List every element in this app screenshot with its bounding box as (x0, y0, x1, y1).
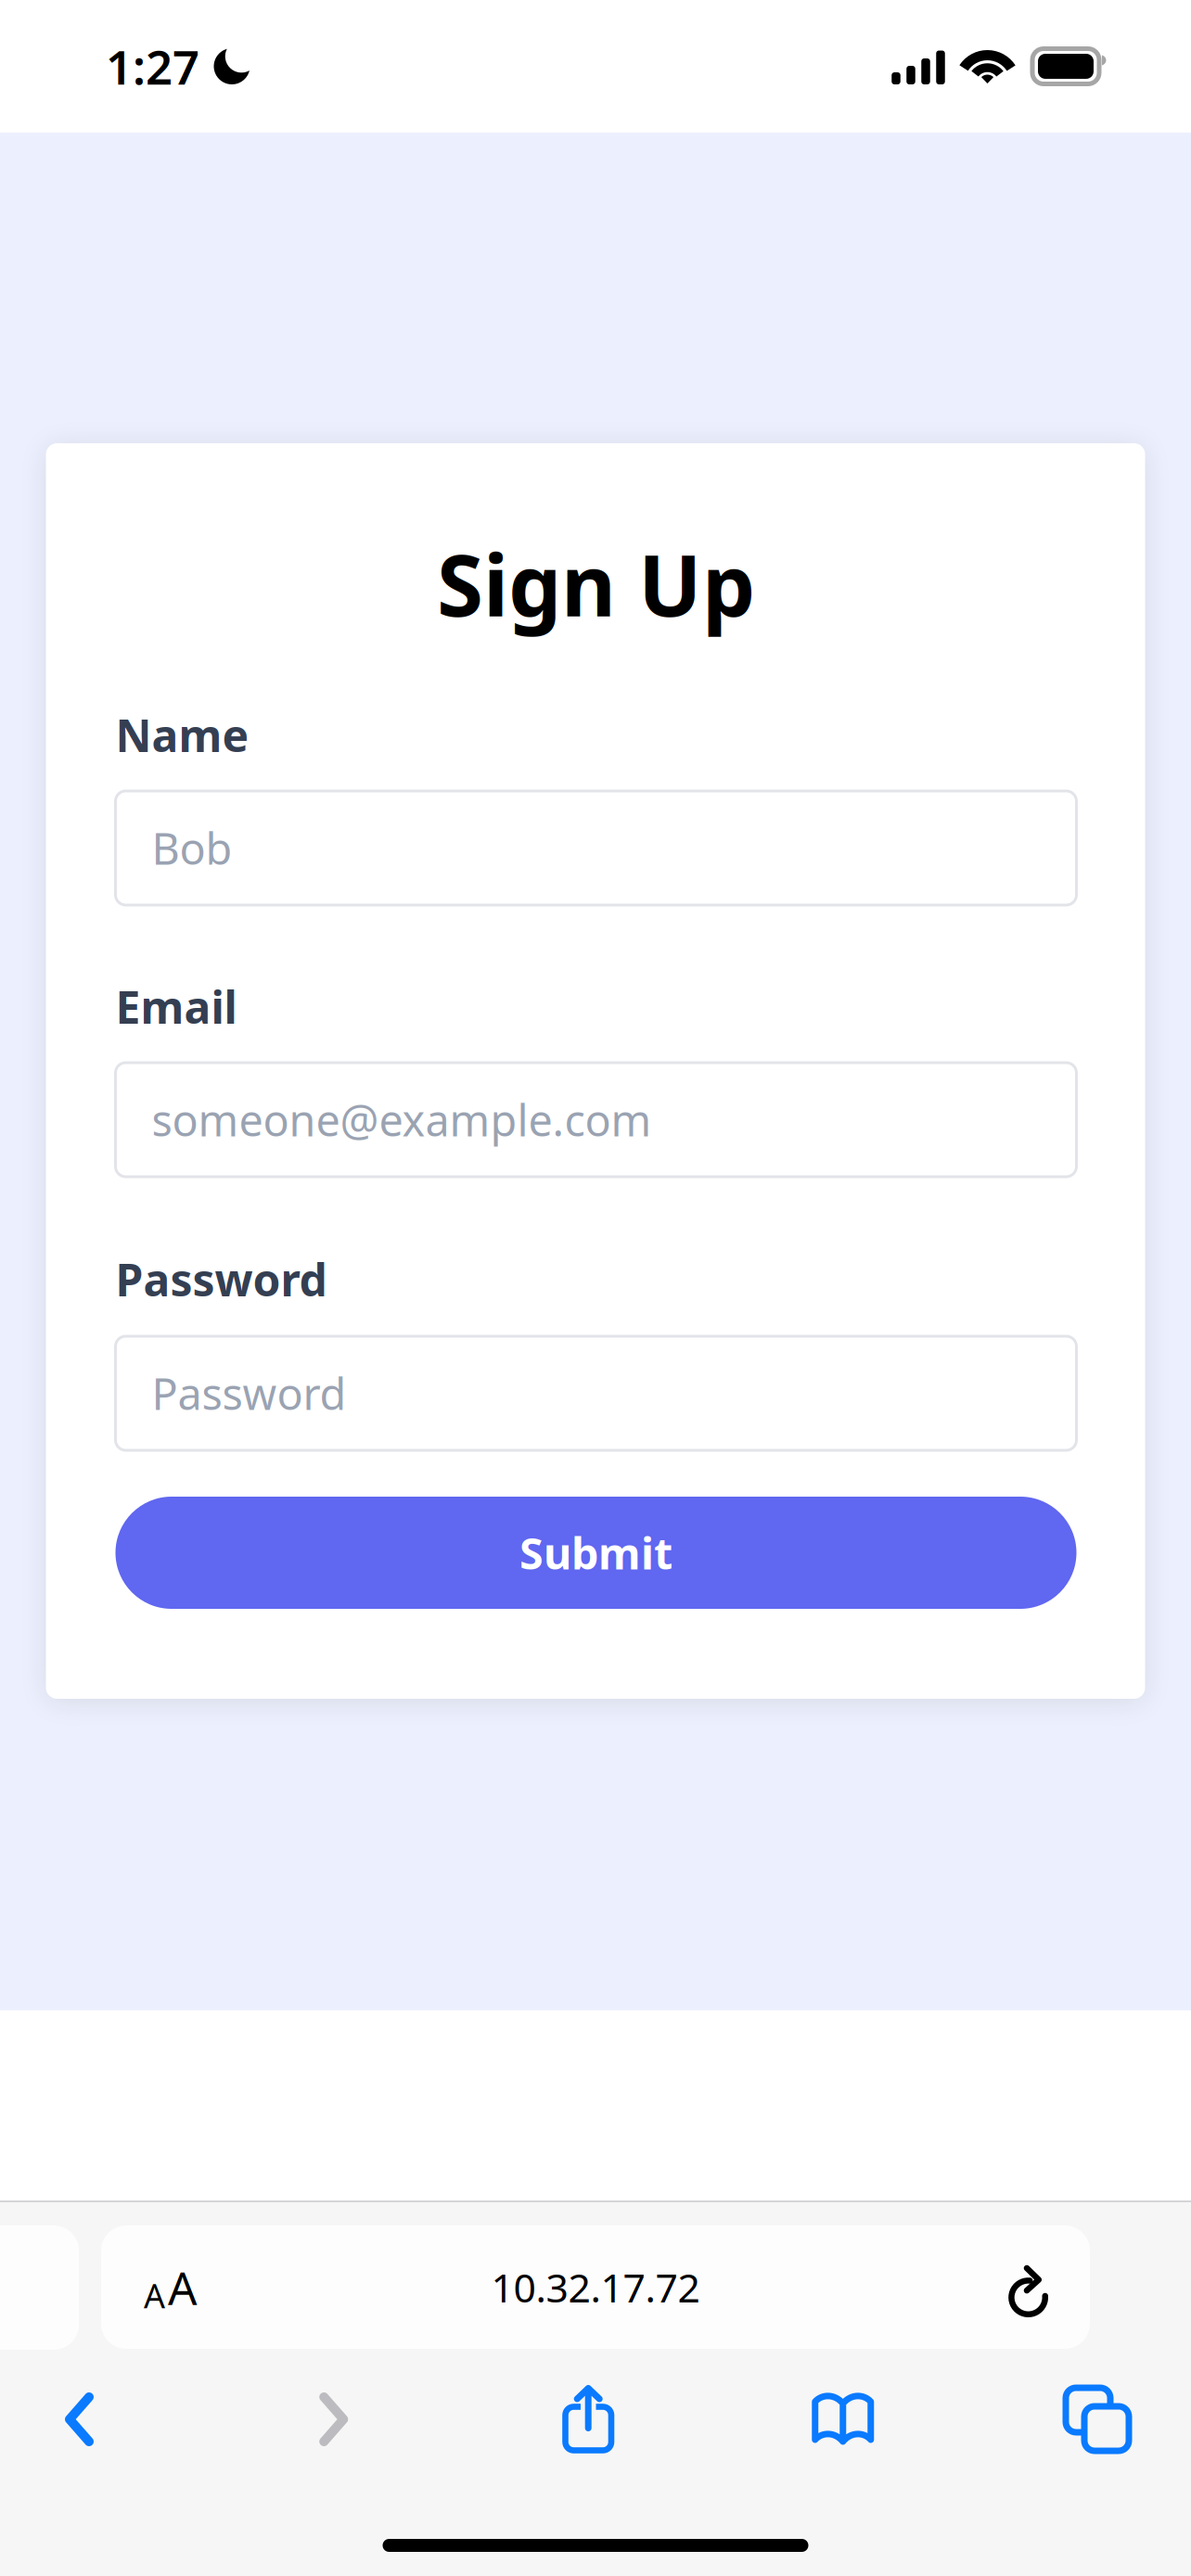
staticText: 10.32.17.72 (491, 2261, 700, 2313)
button[interactable]: Page Settings (101, 2225, 225, 2349)
staticText: someone@example.com (152, 1091, 652, 1148)
staticText: Sign Up (437, 528, 755, 640)
button[interactable]: Bookmarks (781, 2377, 905, 2462)
button[interactable]: Share (526, 2377, 651, 2462)
staticText: 1:27 (106, 35, 199, 98)
staticText: Password (115, 1250, 327, 1309)
button[interactable]: Back (18, 2377, 142, 2462)
staticText: Name (115, 705, 249, 764)
staticText: A (168, 2257, 198, 2317)
button[interactable]: Tabs (1035, 2377, 1159, 2462)
button[interactable]: Reload (966, 2225, 1090, 2349)
staticText: Email (115, 977, 237, 1036)
staticText: Bob (152, 819, 232, 877)
staticText: Password (152, 1365, 346, 1422)
button[interactable]: Submit (115, 1497, 1076, 1609)
staticText: A (144, 2273, 165, 2317)
button[interactable]: Forward (272, 2377, 396, 2462)
staticText: Submit (519, 1524, 672, 1581)
